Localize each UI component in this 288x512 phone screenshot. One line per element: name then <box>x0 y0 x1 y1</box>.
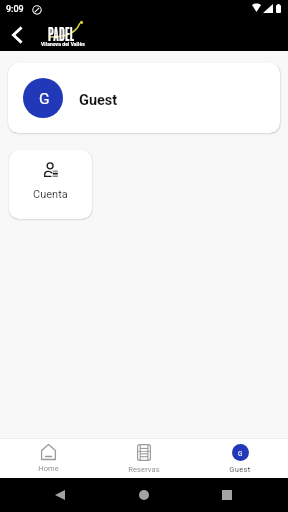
button[interactable]: Home <box>0 439 96 478</box>
staticText: Vilanova del Vallès <box>41 41 85 47</box>
button[interactable]: G <box>8 63 280 133</box>
staticText: 9:09 <box>6 4 24 15</box>
button[interactable]: Back <box>55 490 65 500</box>
staticText: PADEL <box>48 21 75 46</box>
staticText: Cuenta <box>33 188 68 201</box>
staticText: G <box>238 450 243 458</box>
button[interactable]: Cuenta <box>9 150 92 219</box>
staticText: Guest <box>229 465 251 474</box>
staticText: G <box>39 90 50 108</box>
staticText: Reservas <box>128 465 160 474</box>
staticText: Guest <box>79 92 118 109</box>
button[interactable]: Back <box>5 23 29 47</box>
button[interactable]: Home <box>139 490 149 500</box>
button[interactable]: G <box>192 439 288 478</box>
button[interactable]: Reservas <box>96 439 192 478</box>
staticText: Home <box>38 464 59 473</box>
